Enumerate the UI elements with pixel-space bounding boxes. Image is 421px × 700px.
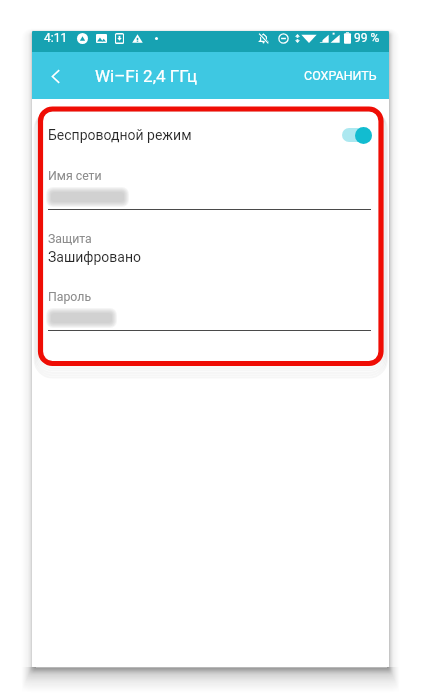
staticText: СОХРАНИТЬ <box>304 68 377 83</box>
staticText: Защита <box>48 232 92 246</box>
staticText: Пароль <box>48 290 92 304</box>
staticText: Wi–Fi 2,4 ГГц <box>95 66 198 86</box>
staticText: Имя сети <box>48 169 102 183</box>
staticText: Зашифровано <box>48 249 142 265</box>
button[interactable]: Беспроводной режим <box>32 119 389 151</box>
button[interactable]: СОХРАНИТЬ <box>299 59 382 92</box>
staticText: Беспроводной режим <box>48 127 192 143</box>
staticText: 4:11 <box>44 31 68 45</box>
staticText: 99 % <box>354 31 380 45</box>
button[interactable]: Back <box>38 58 74 94</box>
button[interactable]: Wireless mode toggle <box>342 125 375 145</box>
